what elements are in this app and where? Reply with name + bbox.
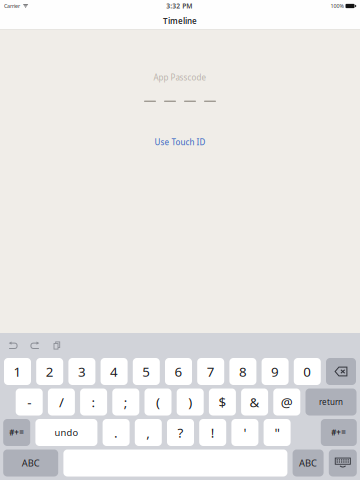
staticText: ? [177,424,183,441]
staticText: ( [156,393,160,411]
button[interactable]: ? [167,419,194,446]
button[interactable]: 6 [165,358,192,385]
button[interactable]: Undo [2,337,24,353]
button[interactable]: @ [273,388,300,415]
button[interactable]: ) [177,388,204,415]
button[interactable]: Delete [326,358,356,385]
staticText: @ [281,393,293,411]
button[interactable]: ! [199,419,226,446]
staticText: undo [54,426,78,439]
staticText: 6 [174,363,182,380]
button[interactable]: 9 [262,358,289,385]
staticText: 4 [110,363,118,380]
staticText: #+= [9,427,24,438]
button[interactable]: ABC [3,449,58,476]
staticText: App Passcode [153,72,206,83]
staticText: 1 [13,363,21,380]
button[interactable]: ABC [293,449,324,476]
staticText: . [114,424,118,441]
button[interactable]: 1 [4,358,31,385]
button[interactable]: ; [112,388,139,415]
staticText: - [27,393,31,411]
staticText: #+= [331,427,346,438]
staticText: / [59,393,64,411]
button[interactable]: ' [231,419,258,446]
staticText: 100% [330,2,343,10]
button[interactable]: undo [35,419,97,446]
staticText: " [275,424,280,441]
staticText: Use Touch ID [154,137,205,147]
button[interactable]: - [16,388,43,415]
button[interactable]: $ [209,388,236,415]
staticText: return [319,397,343,407]
staticText: ) [188,393,192,411]
button[interactable]: 2 [36,358,63,385]
button[interactable]: , [135,419,162,446]
button[interactable]: #+= [3,419,30,446]
button[interactable]: #+= [321,419,357,446]
staticText: 8 [239,363,247,380]
button[interactable]: 5 [133,358,160,385]
staticText: ABC [22,457,40,469]
staticText: 9 [271,363,279,380]
button[interactable]: : [80,388,107,415]
staticText: ' [243,424,246,441]
button[interactable]: . [103,419,130,446]
staticText: , [146,424,150,441]
staticText: ABC [299,457,317,469]
button[interactable]: 7 [197,358,224,385]
staticText: 3:32 PM [166,2,192,10]
button[interactable]: Paste [46,337,68,353]
button[interactable]: ( [144,388,171,415]
staticText: ! [211,424,215,441]
button[interactable]: & [241,388,268,415]
staticText: Carrier [4,2,20,10]
button[interactable]: 4 [101,358,128,385]
staticText: ; [124,393,128,411]
staticText: 3 [78,363,86,380]
staticText: 2 [46,363,54,380]
button[interactable]: return [305,388,356,415]
staticText: : [92,393,96,411]
staticText: & [250,393,260,411]
button[interactable]: 0 [294,358,321,385]
staticText: 7 [207,363,215,380]
button[interactable]: / [48,388,75,415]
staticText: 0 [303,363,311,380]
button[interactable]: Use Touch ID [148,135,211,149]
staticText: Timeline [163,16,197,26]
button[interactable]: Redo [24,337,46,353]
button[interactable]: " [264,419,291,446]
button[interactable]: 3 [68,358,95,385]
button[interactable]: Hide Keyboard [329,449,357,476]
button[interactable]: 8 [229,358,256,385]
staticText: $ [218,393,226,411]
staticText: 5 [142,363,150,380]
